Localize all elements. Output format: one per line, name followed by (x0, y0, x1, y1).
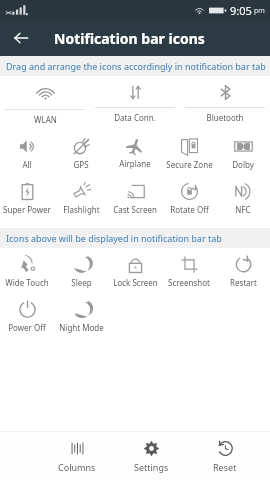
staticText: Data Conn. (114, 112, 156, 123)
staticText: Airplane (119, 158, 151, 169)
button[interactable]: Reset (194, 440, 256, 473)
button[interactable]: Super Power (0, 175, 54, 220)
button[interactable]: Back (6, 23, 36, 53)
button[interactable]: Data Conn. (90, 76, 180, 128)
staticText: Wide Touch (5, 277, 49, 288)
staticText: WLAN (34, 114, 57, 125)
staticText: Power Off (8, 322, 46, 333)
staticText: Screenshot (168, 277, 210, 288)
staticText: Rotate Off (170, 204, 209, 215)
staticText: Dolby (232, 159, 254, 170)
button[interactable]: Settings (120, 440, 182, 473)
staticText: Settings (134, 461, 169, 473)
staticText: 9:05 (230, 3, 252, 18)
button[interactable]: Secure Zone (162, 130, 216, 175)
button[interactable]: Night Mode (54, 293, 108, 338)
button[interactable]: Restart (216, 248, 270, 293)
staticText: All (22, 159, 32, 170)
button[interactable]: Dolby (216, 130, 270, 175)
button[interactable]: GPS (54, 130, 108, 175)
staticText: Sleep (71, 277, 92, 288)
button[interactable]: Flashlight (54, 175, 108, 220)
button[interactable]: Sleep (54, 248, 108, 293)
button[interactable]: Lock Screen (108, 248, 162, 293)
staticText: NFC (235, 204, 251, 215)
staticText: Super Power (3, 204, 51, 215)
button[interactable]: Cast Screen (108, 175, 162, 220)
staticText: Flashlight (63, 204, 100, 215)
staticText: Reset (213, 461, 237, 473)
button[interactable]: Bluetooth (180, 76, 270, 128)
staticText: GPS (73, 159, 89, 170)
staticText: Notification bar icons (54, 29, 205, 48)
button[interactable]: Airplane (108, 130, 162, 174)
staticText: Night Mode (59, 322, 104, 333)
button[interactable]: Wide Touch (0, 248, 54, 293)
button[interactable]: Screenshot (162, 248, 216, 293)
button[interactable]: All (0, 130, 54, 175)
staticText: Cast Screen (113, 204, 157, 215)
button[interactable]: Columns (46, 440, 108, 473)
staticText: pm (254, 6, 265, 16)
staticText: Icons above will be displayed in notific… (6, 232, 222, 244)
staticText: Secure Zone (166, 159, 213, 170)
button[interactable]: Power Off (0, 293, 54, 338)
staticText: Drag and arrange the icons accordingly i… (6, 60, 266, 72)
button[interactable]: WLAN (0, 76, 90, 130)
staticText: Columns (58, 461, 96, 473)
staticText: Restart (230, 277, 257, 288)
button[interactable]: NFC (216, 175, 270, 220)
staticText: Lock Screen (113, 277, 158, 288)
staticText: Bluetooth (206, 112, 244, 123)
button[interactable]: Rotate Off (162, 175, 216, 220)
